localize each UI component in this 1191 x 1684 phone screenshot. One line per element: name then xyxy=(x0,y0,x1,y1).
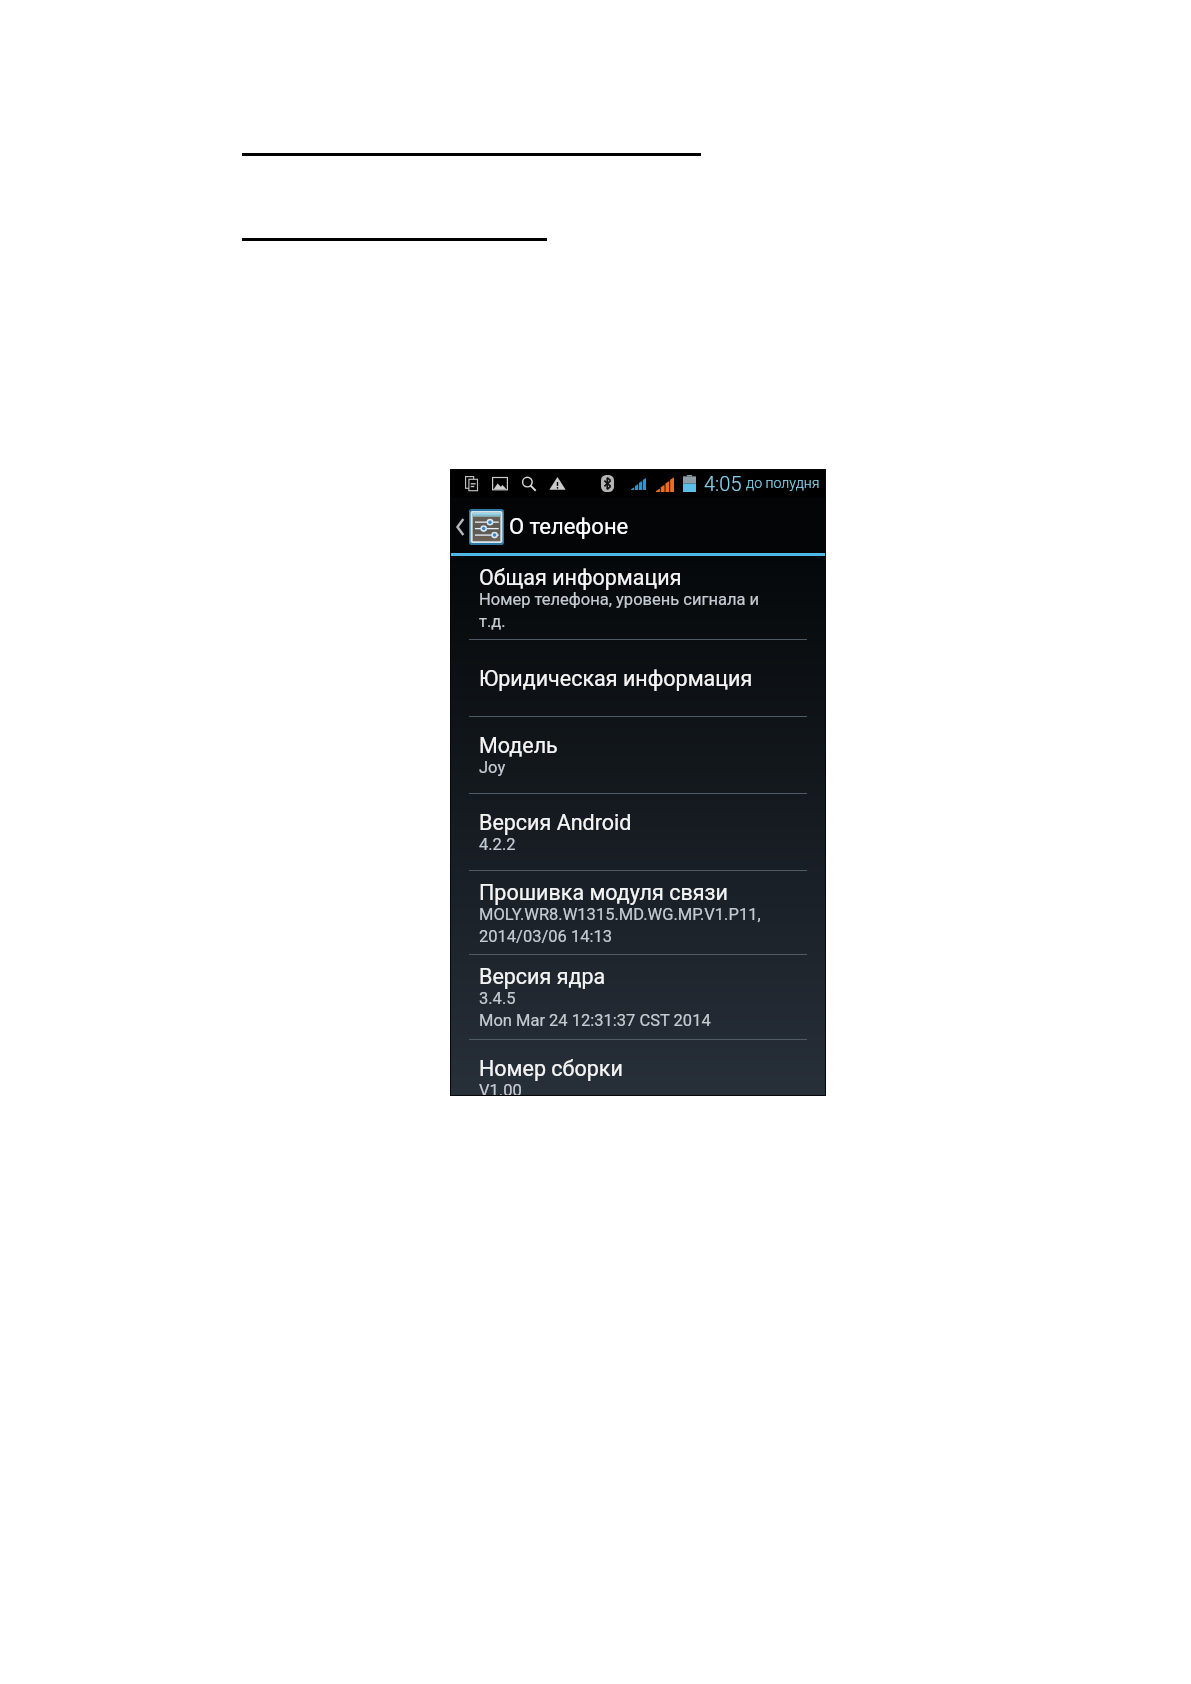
button[interactable]: Версия Android xyxy=(450,794,826,870)
staticText: 3.4.5 Mon Mar 24 12:31:37 CST 2014 xyxy=(479,989,711,1030)
button[interactable]: Версия ядра xyxy=(450,955,826,1039)
staticText: Номер сборки xyxy=(479,1056,623,1081)
staticText: Версия ядра xyxy=(479,964,606,989)
button[interactable]: Номер сборки xyxy=(450,1040,826,1096)
staticText: MOLY.WR8.W1315.MD.WG.MP.V1.P11, 2014/03/… xyxy=(479,905,761,946)
staticText: V1.00 xyxy=(479,1081,522,1096)
staticText: Номер телефона, уровень сигнала и т.д. xyxy=(479,590,760,631)
button[interactable]: Юридическая информация xyxy=(450,640,826,716)
staticText: Юридическая информация xyxy=(479,666,753,691)
staticText: Прошивка модуля связи xyxy=(479,880,728,905)
staticText: Joy xyxy=(479,758,506,777)
staticText: 4:05 xyxy=(704,472,742,495)
button[interactable]: Прошивка модуля связи xyxy=(450,871,826,954)
other: Navigate up xyxy=(450,501,469,553)
staticText: О телефоне xyxy=(509,514,629,540)
button[interactable]: Navigate up xyxy=(450,498,826,553)
staticText: Модель xyxy=(479,733,558,758)
staticText: Версия Android xyxy=(479,810,632,835)
button[interactable]: Модель xyxy=(450,717,826,793)
staticText: до полудня xyxy=(746,475,820,492)
staticText: 4.2.2 xyxy=(479,835,516,854)
staticText: Общая информация xyxy=(479,565,682,590)
button[interactable]: Общая информация xyxy=(450,556,826,639)
